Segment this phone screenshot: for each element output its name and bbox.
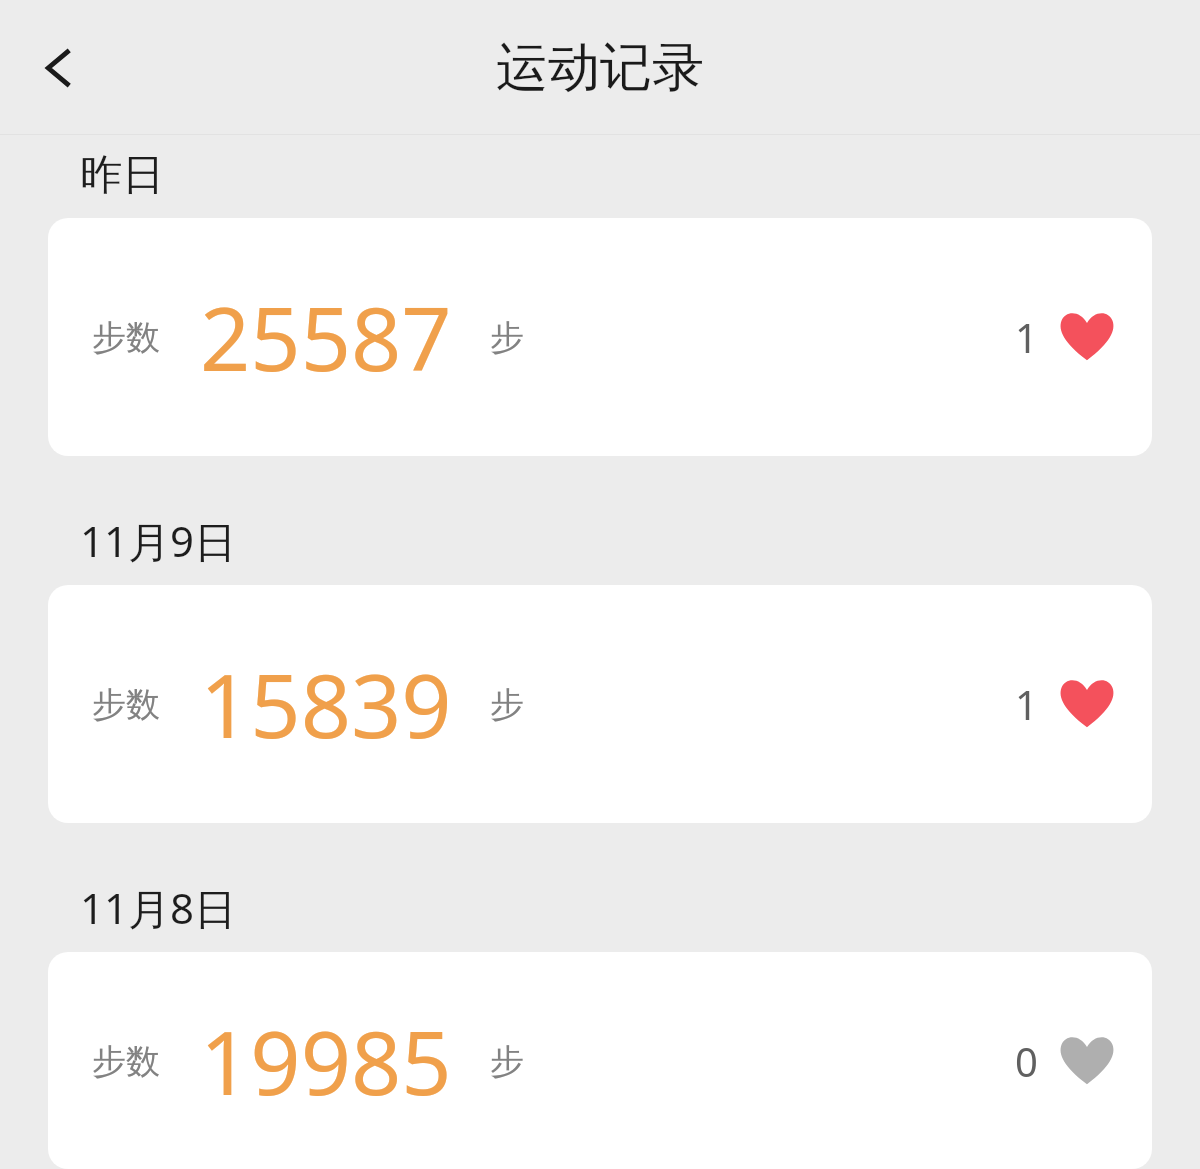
button[interactable]: Back [22, 30, 98, 106]
staticText: 步 [490, 683, 524, 726]
staticText: 1 [1015, 310, 1038, 364]
staticText: 步数 [92, 683, 160, 726]
staticText: 11月8日 [80, 879, 237, 936]
button[interactable]: 步数 [48, 585, 1152, 823]
staticText: 25587 [200, 277, 452, 397]
staticText: 19985 [200, 1001, 452, 1121]
staticText: 1 [1015, 677, 1038, 731]
button[interactable]: Like [1015, 308, 1116, 366]
button[interactable]: Like [1015, 1032, 1116, 1090]
staticText: 0 [1015, 1034, 1038, 1088]
staticText: 步数 [92, 316, 160, 359]
staticText: 步数 [92, 1040, 160, 1083]
staticText: 昨日 [80, 149, 164, 202]
staticText: 15839 [200, 644, 452, 764]
staticText: 步 [490, 1040, 524, 1083]
button[interactable]: 步数 [48, 952, 1152, 1169]
staticText: 11月9日 [80, 512, 237, 569]
staticText: 步 [490, 316, 524, 359]
button[interactable]: Like [1015, 675, 1116, 733]
staticText: 运动记录 [496, 35, 704, 101]
button[interactable]: 步数 [48, 218, 1152, 456]
